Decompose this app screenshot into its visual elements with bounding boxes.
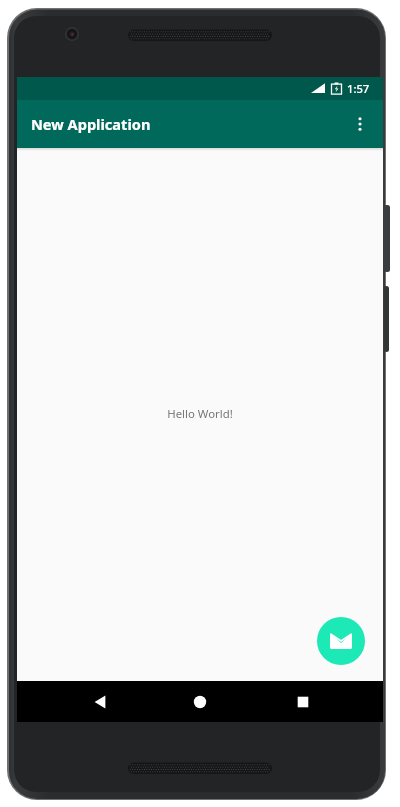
button[interactable]: Home — [176, 684, 224, 720]
button[interactable]: Back — [76, 684, 124, 720]
staticText: Hello World! — [17, 406, 383, 424]
button[interactable]: More options — [344, 100, 376, 148]
staticText: 1:57 — [347, 81, 370, 96]
button[interactable]: Send email — [317, 617, 365, 665]
button[interactable]: Recent apps — [279, 684, 327, 720]
staticText: New Application — [31, 114, 151, 134]
